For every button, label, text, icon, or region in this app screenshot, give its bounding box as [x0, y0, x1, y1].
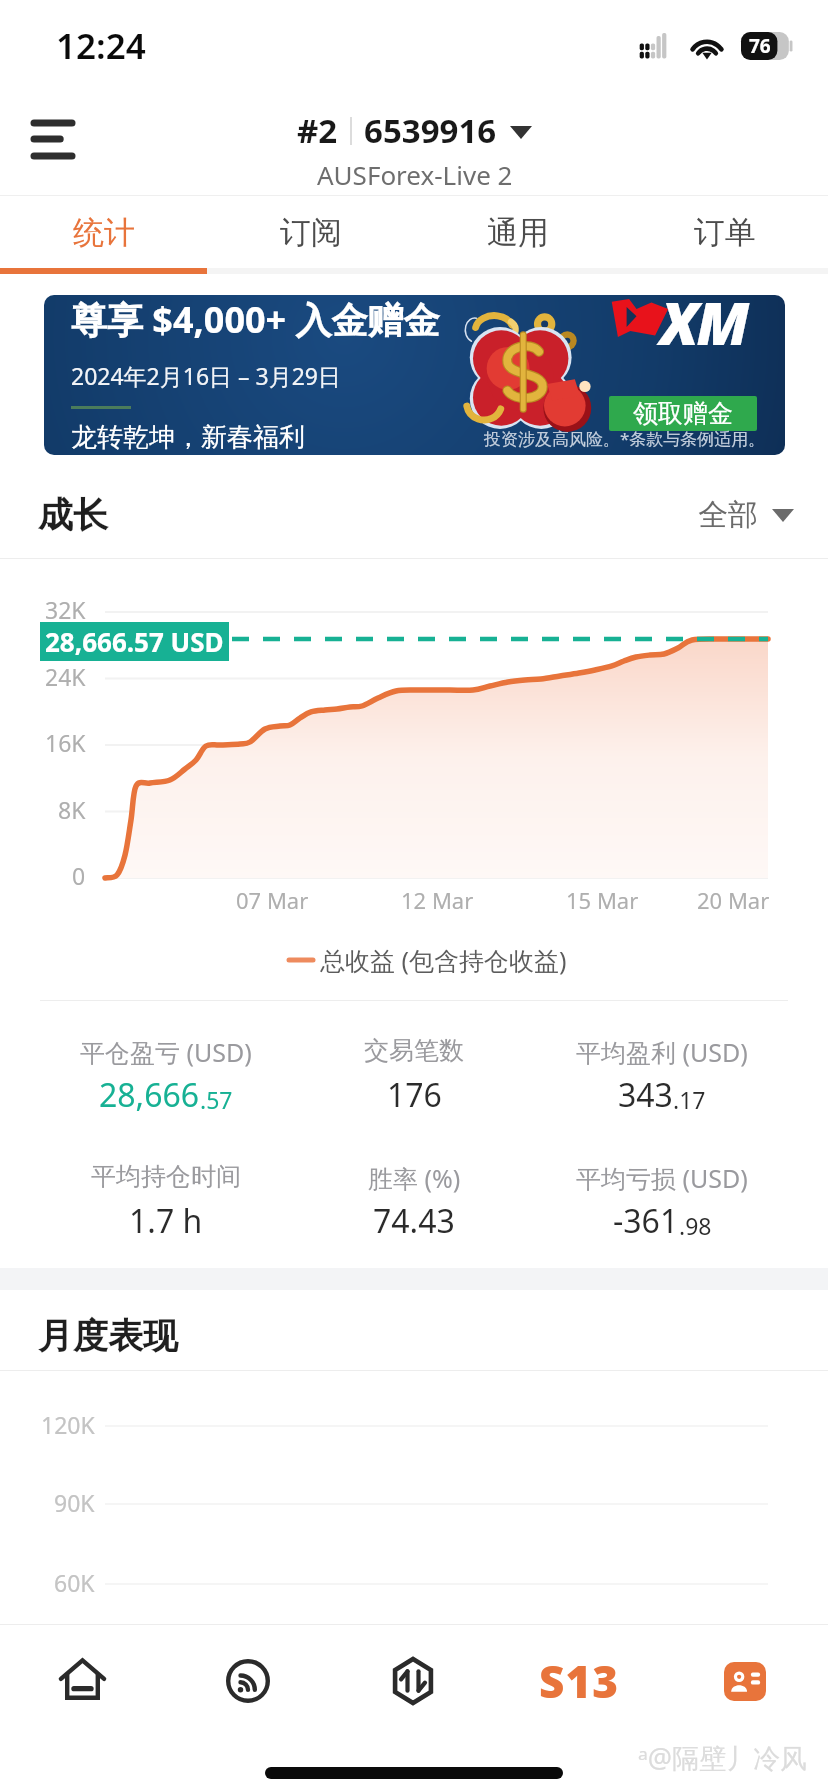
- staticText: 统计: [73, 213, 135, 252]
- staticText: 74.43: [373, 1199, 455, 1243]
- staticText: 1.7 h: [129, 1199, 203, 1243]
- staticText: 16K: [45, 727, 86, 758]
- button[interactable]: Profile: [662, 1625, 828, 1737]
- button[interactable]: 订阅: [207, 196, 414, 268]
- button[interactable]: Signals: [165, 1625, 330, 1737]
- staticText: 60K: [54, 1567, 95, 1598]
- staticText: 20 Mar: [697, 885, 770, 915]
- button[interactable]: #2: [297, 108, 532, 192]
- staticText: 120K: [41, 1409, 95, 1440]
- button[interactable]: 领取赠金: [609, 396, 757, 431]
- button[interactable]: Home: [0, 1625, 165, 1737]
- staticText: 成长: [38, 493, 108, 537]
- staticText: 总收益 (包含持仓收益): [320, 943, 567, 977]
- staticText: .98: [679, 1210, 712, 1241]
- staticText: 平均亏损 (USD): [576, 1161, 748, 1195]
- button[interactable]: Menu: [20, 108, 86, 164]
- staticText: 07 Mar: [236, 885, 309, 915]
- staticText: 龙转乾坤，新春福利: [71, 421, 305, 454]
- staticText: 全部: [698, 496, 758, 534]
- staticText: 订单: [694, 213, 756, 252]
- staticText: 12 Mar: [401, 885, 474, 915]
- staticText: 24K: [45, 661, 86, 692]
- staticText: 胜率 (%): [368, 1161, 461, 1195]
- staticText: 0: [72, 860, 86, 891]
- staticText: .57: [200, 1084, 233, 1115]
- staticText: 平仓盈亏 (USD): [80, 1035, 252, 1069]
- staticText: 8K: [58, 794, 86, 825]
- staticText: 6539916: [364, 108, 497, 153]
- staticText: S13: [539, 1651, 619, 1711]
- button[interactable]: Trade: [330, 1625, 496, 1737]
- staticText: #2: [297, 108, 338, 153]
- staticText: 28,666: [99, 1073, 200, 1117]
- staticText: 12:24: [56, 22, 146, 70]
- staticText: 90K: [54, 1487, 95, 1518]
- button[interactable]: 全部: [698, 496, 794, 534]
- staticText: 通用: [487, 213, 549, 252]
- button[interactable]: 通用: [414, 196, 621, 268]
- staticText: XM: [660, 295, 748, 362]
- staticText: 平均盈利 (USD): [576, 1035, 748, 1069]
- staticText: 投资涉及高风险。*条款与条例适用。: [484, 427, 766, 450]
- staticText: 交易笔数: [364, 1035, 464, 1066]
- staticText: AUSForex-Live 2: [317, 157, 513, 192]
- staticText: 订阅: [280, 213, 342, 252]
- staticText: 尊享 $4,000+ 入金赠金: [71, 295, 440, 344]
- button[interactable]: S13: [496, 1625, 662, 1737]
- button[interactable]: 统计: [0, 196, 207, 268]
- staticText: 76: [749, 33, 771, 59]
- staticText: 月度表现: [38, 1314, 178, 1358]
- staticText: 343: [618, 1073, 673, 1117]
- staticText: .17: [673, 1084, 706, 1115]
- staticText: 领取赠金: [633, 398, 733, 429]
- staticText: ᵃ@隔壁丿冷风: [638, 1739, 808, 1776]
- staticText: 28,666.57 USD: [45, 624, 224, 659]
- staticText: 32K: [45, 594, 86, 625]
- staticText: 176: [387, 1073, 442, 1117]
- staticText: 15 Mar: [566, 885, 639, 915]
- button[interactable]: 尊享 $4,000+ 入金赠金: [44, 295, 785, 455]
- staticText: -361: [613, 1199, 679, 1243]
- staticText: 平均持仓时间: [91, 1161, 241, 1192]
- button[interactable]: 订单: [621, 196, 828, 268]
- staticText: 2024年2月16日 – 3月29日: [71, 360, 342, 391]
